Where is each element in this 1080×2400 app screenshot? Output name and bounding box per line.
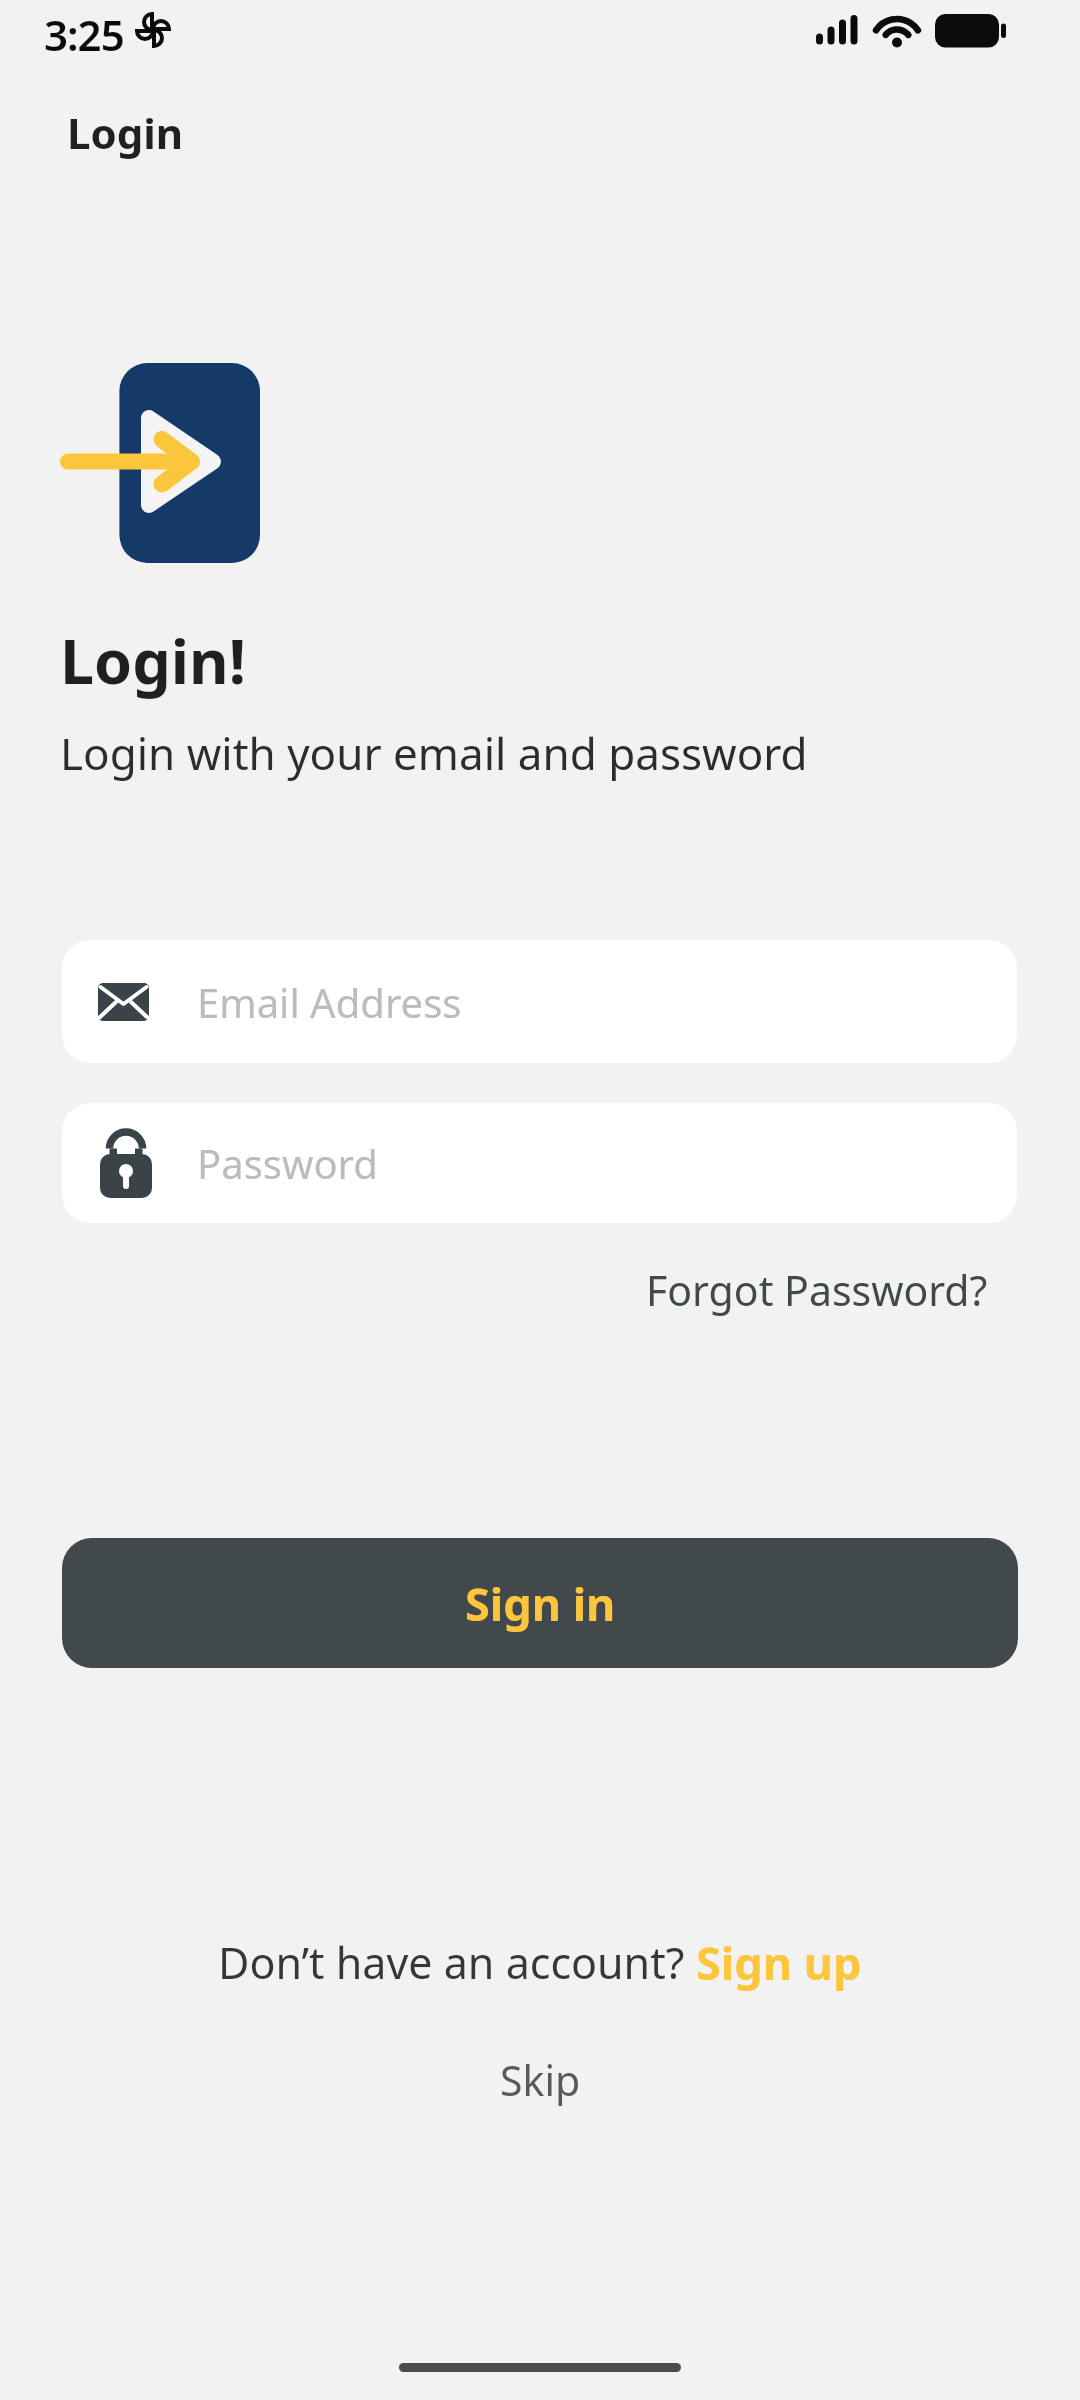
button[interactable]: Sign in bbox=[62, 1538, 1018, 1668]
staticText: Sign in bbox=[465, 1573, 616, 1634]
button[interactable]: Forgot Password? bbox=[646, 1262, 988, 1318]
button[interactable]: Skip bbox=[500, 2052, 581, 2108]
staticText: Login with your email and password bbox=[60, 723, 808, 783]
staticText: Login! bbox=[60, 619, 246, 702]
staticText: Don’t have an account? bbox=[218, 1933, 696, 1992]
button[interactable]: Password bbox=[62, 1103, 1017, 1223]
staticText: Password bbox=[197, 1136, 378, 1190]
staticText: Login bbox=[67, 104, 184, 161]
button[interactable]: Sign up bbox=[696, 1932, 862, 1993]
staticText: Email Address bbox=[197, 975, 462, 1029]
button[interactable]: Email Address bbox=[62, 940, 1017, 1063]
staticText: 3:25 bbox=[44, 6, 124, 63]
